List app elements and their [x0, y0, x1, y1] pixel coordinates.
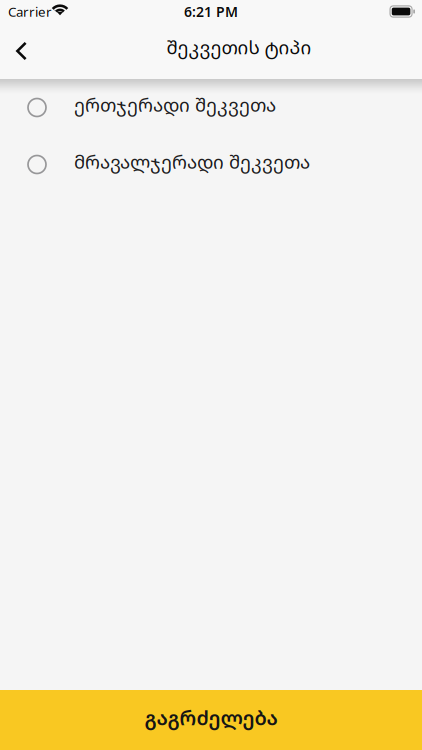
button[interactable]: Back	[0, 23, 41, 79]
staticText: შეკვეთის ტიპი	[166, 34, 311, 60]
button[interactable]: ერთჯერადი შეკვეთა	[0, 79, 422, 136]
staticText: გაგრძელება	[144, 704, 277, 731]
staticText: ერთჯერადი შეკვეთა	[74, 92, 276, 117]
staticText: 6:21 PM	[184, 2, 238, 21]
staticText: Carrier	[8, 2, 52, 21]
button[interactable]: გაგრძელება	[0, 690, 422, 750]
button[interactable]: მრავალჯერადი შეკვეთა	[0, 136, 422, 193]
staticText: მრავალჯერადი შეკვეთა	[74, 149, 310, 174]
